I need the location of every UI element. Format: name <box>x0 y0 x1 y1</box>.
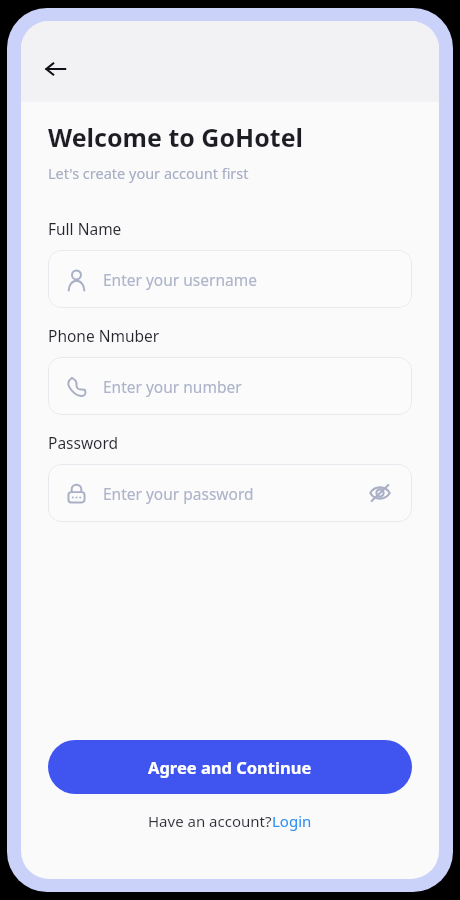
button[interactable]: Login <box>272 811 312 831</box>
staticText: Login <box>272 811 312 831</box>
button[interactable]: Enter your number <box>48 357 412 415</box>
staticText: Enter your number <box>103 376 395 397</box>
staticText: Have an account? <box>148 811 272 831</box>
staticText: Password <box>48 432 119 453</box>
staticText: Enter your password <box>103 483 365 504</box>
button[interactable]: Enter your password <box>48 464 412 522</box>
staticText: Let's create your account first <box>48 163 249 183</box>
staticText: Enter your username <box>103 269 395 290</box>
staticText: Phone Nmuber <box>48 325 160 346</box>
staticText: Full Name <box>48 218 122 239</box>
staticText: Agree and Continue <box>148 756 312 778</box>
button[interactable]: Show password <box>365 478 395 508</box>
button[interactable]: Enter your username <box>48 250 412 308</box>
button[interactable]: Agree and Continue <box>48 740 412 794</box>
staticText: Welcome to GoHotel <box>48 120 304 154</box>
button[interactable]: Back <box>33 47 77 91</box>
